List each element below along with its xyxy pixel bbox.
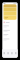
button[interactable]: Item [3,23,16,27]
button[interactable]: Item [3,32,16,36]
button[interactable]: Tab [14,51,18,56]
button[interactable]: Tab [2,51,6,56]
button[interactable]: Item [3,36,16,40]
button[interactable]: Tab [10,51,14,56]
button[interactable]: Item [3,27,16,32]
button[interactable]: Tab [6,51,10,56]
